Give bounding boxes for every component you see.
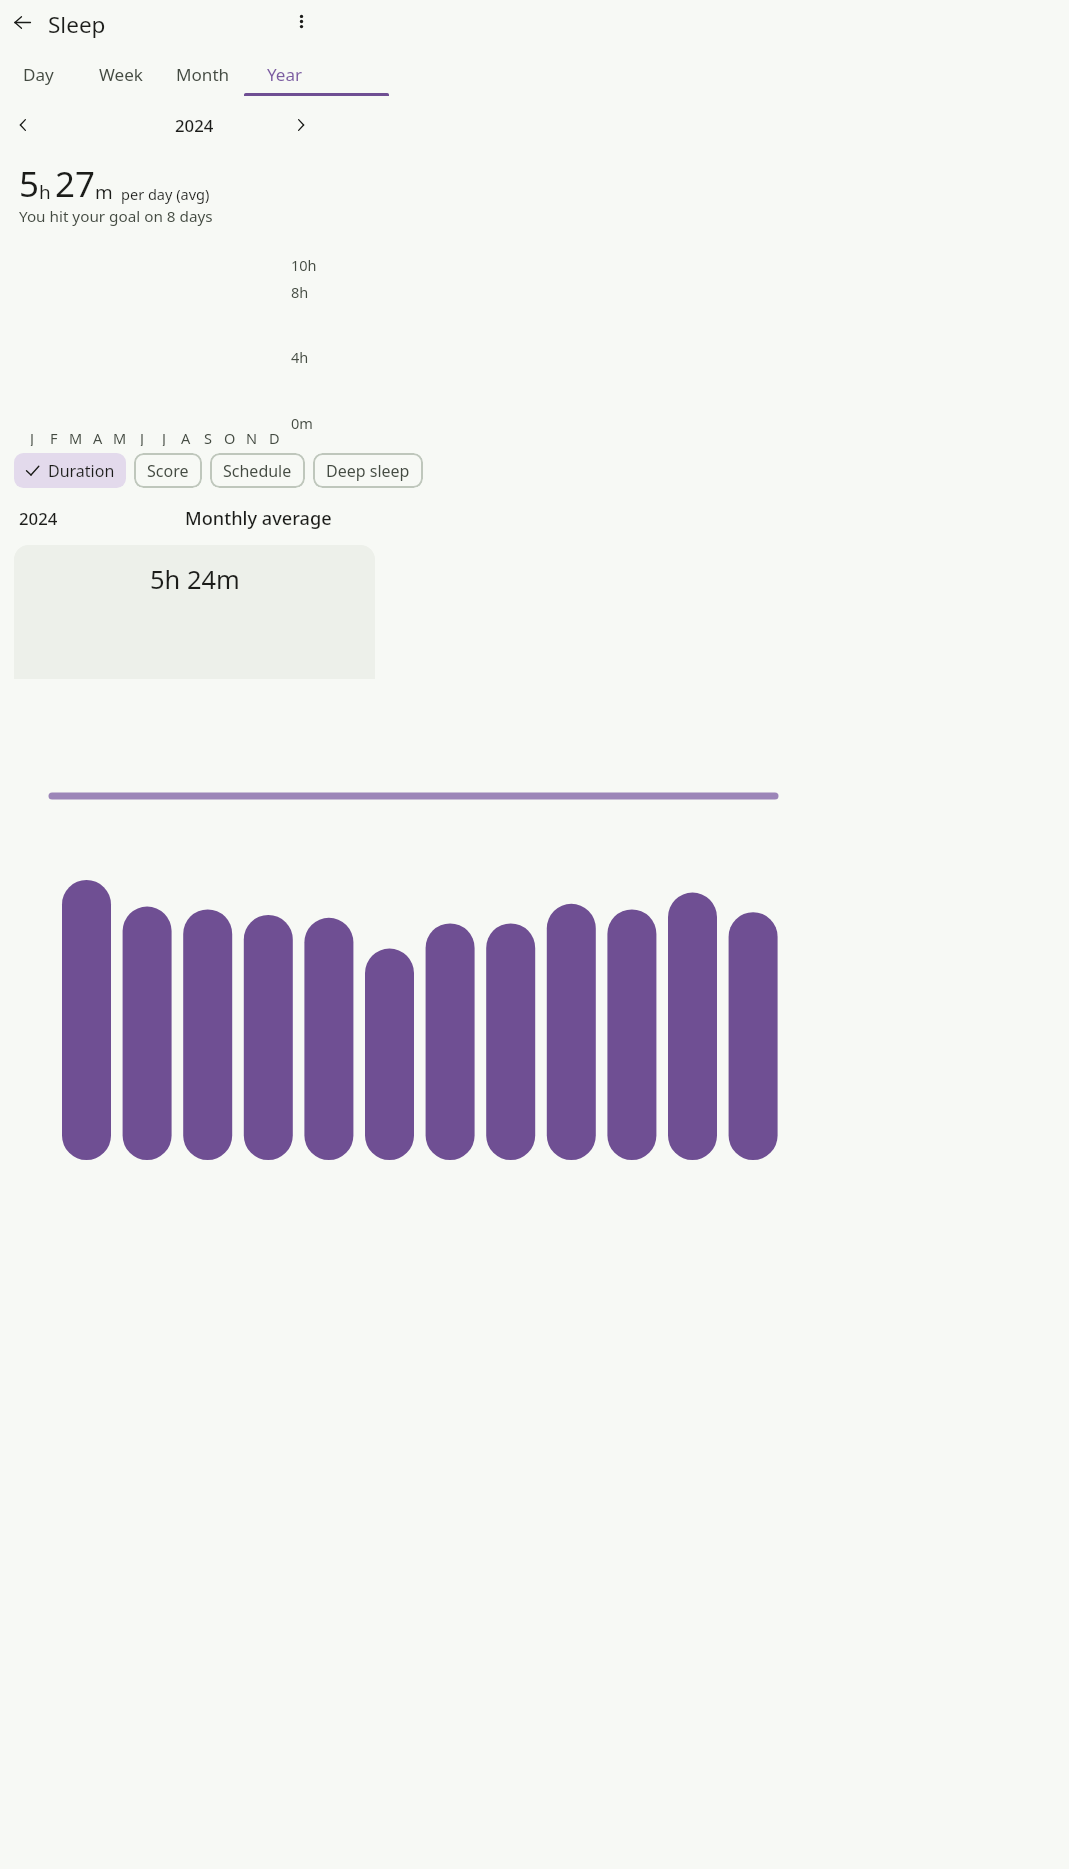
staticText: m <box>95 179 113 205</box>
button[interactable]: Next year <box>287 111 315 139</box>
staticText: Score <box>147 460 189 482</box>
staticText: 5 <box>19 160 39 208</box>
button[interactable]: Schedule <box>210 453 305 488</box>
staticText: 10h <box>291 255 317 275</box>
staticText: 2024 <box>175 114 214 137</box>
button[interactable]: Deep sleep <box>313 453 423 488</box>
staticText: 4h <box>291 347 309 367</box>
staticText: 5h 24m <box>150 562 240 597</box>
staticText: J <box>140 428 144 446</box>
staticText: J <box>30 428 34 446</box>
staticText: A <box>181 428 191 446</box>
button[interactable]: More options <box>287 7 316 36</box>
staticText: 27 <box>55 160 95 208</box>
staticText: Duration <box>48 460 115 482</box>
staticText: Week <box>99 63 143 86</box>
button[interactable]: 2024 <box>138 111 251 139</box>
staticText: Month <box>176 63 230 86</box>
staticText: Year <box>267 63 303 86</box>
staticText: 8h <box>291 282 309 302</box>
button[interactable]: Back <box>8 8 36 36</box>
staticText: M <box>113 428 127 446</box>
button[interactable]: Week <box>77 57 164 93</box>
button[interactable]: Day <box>0 57 82 93</box>
staticText: M <box>69 428 83 446</box>
staticText: Deep sleep <box>326 460 410 482</box>
staticText: Monthly average <box>185 506 332 531</box>
button[interactable]: Previous year <box>9 111 37 139</box>
staticText: S <box>204 428 212 446</box>
staticText: F <box>50 428 58 446</box>
staticText: N <box>246 428 258 446</box>
staticText: J <box>162 428 166 446</box>
staticText: D <box>269 428 280 446</box>
button[interactable]: Score <box>134 453 202 488</box>
staticText: 2024 <box>19 507 58 530</box>
staticText: Sleep <box>48 9 106 40</box>
button[interactable]: Year <box>241 57 328 93</box>
staticText: h <box>39 179 51 205</box>
staticText: A <box>93 428 103 446</box>
staticText: You hit your goal on 8 days <box>19 206 213 227</box>
staticText: O <box>224 428 236 446</box>
staticText: per day (avg) <box>121 184 210 204</box>
button[interactable]: Duration <box>14 453 126 488</box>
button[interactable]: Month <box>159 57 246 93</box>
staticText: 0m <box>291 413 313 433</box>
button[interactable]: 5h 24m <box>14 545 375 679</box>
staticText: Schedule <box>223 460 292 482</box>
staticText: Day <box>23 63 54 86</box>
